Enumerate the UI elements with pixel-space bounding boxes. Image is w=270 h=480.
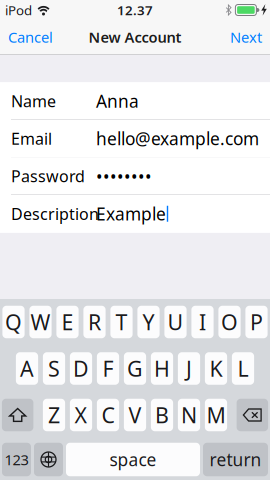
staticText: E (61, 308, 73, 336)
button[interactable]: T (110, 306, 133, 338)
button[interactable]: J (178, 352, 200, 385)
staticText: 12.37 (117, 1, 153, 19)
staticText: A (20, 354, 34, 383)
button[interactable]: Delete (237, 399, 268, 431)
staticText: Next (230, 27, 262, 47)
staticText: B (155, 401, 169, 429)
staticText: Z (48, 401, 60, 429)
staticText: Anna (96, 89, 139, 112)
staticText: 123 (4, 450, 28, 469)
button[interactable]: C (97, 399, 119, 431)
button[interactable]: M (205, 399, 227, 431)
staticText: D (73, 354, 89, 383)
staticText: V (128, 401, 141, 429)
staticText: L (237, 354, 248, 383)
staticText: hello@example.com (96, 127, 259, 150)
button[interactable]: Email (0, 120, 270, 157)
staticText: N (181, 401, 197, 429)
button[interactable]: H (151, 352, 173, 385)
button[interactable]: Y (137, 306, 160, 338)
staticText: space (109, 448, 156, 471)
staticText: W (30, 308, 50, 336)
staticText: U (167, 308, 183, 336)
button[interactable]: Shift (2, 399, 33, 431)
staticText: C (101, 401, 114, 429)
staticText: H (154, 354, 170, 383)
staticText: Cancel (8, 27, 53, 47)
button[interactable]: V (124, 399, 146, 431)
staticText: J (186, 354, 192, 383)
staticText: Email (11, 128, 52, 149)
staticText: Y (142, 308, 154, 336)
button[interactable]: Next (224, 20, 268, 54)
button[interactable]: R (83, 306, 106, 338)
staticText: X (74, 401, 87, 429)
staticText: iPod (5, 1, 32, 19)
button[interactable]: I (191, 306, 214, 338)
staticText: P (250, 308, 263, 336)
staticText: S (48, 354, 60, 383)
button[interactable]: G (124, 352, 146, 385)
button[interactable]: W (29, 306, 52, 338)
staticText: G (127, 354, 143, 383)
staticText: T (115, 308, 127, 336)
button[interactable]: F (97, 352, 119, 385)
staticText: M (206, 401, 225, 429)
button[interactable]: Cancel (2, 20, 59, 54)
button[interactable]: S (43, 352, 65, 385)
staticText: R (88, 308, 101, 336)
button[interactable]: A (16, 352, 38, 385)
staticText: F (102, 354, 113, 383)
staticText: Example (96, 202, 166, 225)
staticText: •••••••• (96, 164, 152, 187)
button[interactable]: Name (0, 82, 270, 120)
button[interactable]: L (232, 352, 254, 385)
staticText: Q (5, 308, 22, 336)
button[interactable]: K (205, 352, 227, 385)
button[interactable]: Password (0, 157, 270, 195)
button[interactable]: D (70, 352, 92, 385)
button[interactable]: P (245, 306, 268, 338)
button[interactable]: Q (2, 306, 25, 338)
staticText: return (209, 448, 261, 471)
button[interactable]: return (203, 443, 268, 476)
staticText: New Account (88, 27, 181, 47)
button[interactable]: N (178, 399, 200, 431)
button[interactable]: E (56, 306, 79, 338)
staticText: K (209, 354, 222, 383)
staticText: I (199, 308, 206, 336)
button[interactable]: U (164, 306, 187, 338)
button[interactable]: B (151, 399, 173, 431)
button[interactable]: Z (43, 399, 65, 431)
staticText: Name (11, 90, 56, 112)
staticText: Description (11, 203, 99, 224)
staticText: Password (11, 165, 85, 187)
button[interactable]: space (66, 443, 200, 476)
button[interactable]: Next keyboard (34, 443, 63, 476)
button[interactable]: O (218, 306, 241, 338)
button[interactable]: Description (0, 195, 270, 232)
button[interactable]: 123 (2, 443, 31, 476)
button[interactable]: X (70, 399, 92, 431)
staticText: O (221, 308, 238, 336)
